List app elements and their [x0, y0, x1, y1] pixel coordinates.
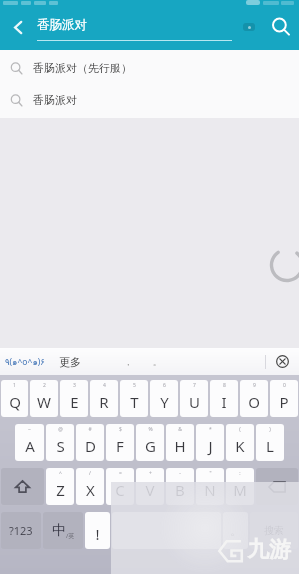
staticText: ^ — [59, 470, 62, 477]
staticText: J — [208, 436, 213, 456]
button[interactable]: + — [136, 468, 164, 505]
button[interactable]: Hide keyboard — [266, 348, 299, 375]
staticText: T — [130, 392, 139, 412]
staticText: I — [221, 392, 227, 412]
button[interactable]: Search — [263, 11, 299, 50]
button[interactable]: 7 — [180, 380, 208, 417]
staticText: ( — [239, 426, 241, 433]
staticText: $ — [119, 426, 122, 433]
button[interactable]: ?123 — [1, 512, 41, 549]
staticText: 6 — [163, 382, 166, 389]
button[interactable]: 更多 — [59, 355, 81, 369]
button[interactable]: 3 — [60, 380, 88, 417]
button[interactable]: ! — [85, 512, 110, 549]
button[interactable]: : — [226, 468, 254, 505]
button[interactable]: ) — [256, 424, 284, 461]
button[interactable]: " — [196, 468, 224, 505]
button[interactable]: ^ — [46, 468, 74, 505]
button[interactable]: Back — [0, 11, 37, 50]
staticText: Q — [9, 392, 21, 412]
button[interactable]: 。 — [223, 512, 248, 549]
staticText: 2 — [43, 382, 46, 389]
staticText: B — [175, 480, 185, 500]
staticText: % — [148, 426, 153, 433]
staticText: " — [209, 470, 212, 477]
button[interactable]: ٩(๑^o^๑)۶ — [5, 355, 45, 369]
button[interactable]: ~ — [15, 424, 44, 461]
staticText: Z — [56, 480, 65, 500]
staticText: / — [89, 470, 91, 477]
staticText: F — [116, 436, 124, 456]
staticText: X — [86, 480, 95, 500]
staticText: Y — [160, 392, 169, 412]
staticText: U — [189, 392, 200, 412]
staticText: 更多 — [59, 355, 81, 369]
staticText: H — [174, 436, 186, 456]
staticText: ) — [269, 426, 271, 433]
staticText: R — [99, 392, 109, 412]
button[interactable]: @ — [46, 424, 74, 461]
button[interactable]: Backspace — [256, 468, 298, 505]
staticText: ٩(๑^o^๑)۶ — [5, 355, 45, 369]
staticText: C — [115, 480, 125, 500]
staticText: E — [70, 392, 79, 412]
staticText: V — [145, 480, 155, 500]
staticText: 7 — [193, 382, 196, 389]
staticText: 。 — [153, 357, 161, 367]
staticText: 5 — [133, 382, 136, 389]
button[interactable]: % — [136, 424, 164, 461]
button[interactable]: / — [76, 468, 104, 505]
button[interactable]: 4 — [90, 380, 118, 417]
staticText: 香肠派对（先行服） — [33, 61, 132, 75]
button[interactable]: ， — [115, 348, 141, 375]
staticText: P — [279, 392, 289, 412]
staticText: = — [119, 470, 122, 477]
staticText: 8 — [223, 382, 226, 389]
button[interactable]: 1 — [1, 380, 28, 417]
staticText: ?123 — [9, 523, 33, 538]
staticText: - — [179, 470, 181, 477]
button[interactable]: ( — [226, 424, 254, 461]
staticText: 1 — [13, 382, 16, 389]
button[interactable]: 。 — [141, 348, 173, 375]
button[interactable]: 搜索 — [250, 512, 298, 549]
staticText: # — [88, 426, 92, 433]
staticText: 3 — [73, 382, 76, 389]
staticText: G — [145, 436, 156, 456]
staticText: N — [204, 480, 216, 500]
button[interactable]: 2 — [30, 380, 58, 417]
staticText: 香肠派对 — [37, 17, 87, 33]
staticText: /英 — [66, 532, 75, 540]
staticText: 4 — [103, 382, 106, 389]
button[interactable]: $ — [106, 424, 134, 461]
staticText: 9 — [253, 382, 256, 389]
button[interactable]: 5 — [120, 380, 148, 417]
button[interactable]: * — [196, 424, 224, 461]
button[interactable]: Clear text — [235, 11, 263, 50]
button[interactable]: 香肠派对（先行服） — [0, 52, 299, 84]
button[interactable]: 9 — [240, 380, 268, 417]
button[interactable]: 8 — [210, 380, 238, 417]
staticText: ， — [124, 357, 132, 367]
button[interactable]: = — [106, 468, 134, 505]
staticText: 中 — [52, 522, 66, 540]
button[interactable]: - — [166, 468, 194, 505]
staticText: O — [248, 392, 260, 412]
button[interactable]: 6 — [150, 380, 178, 417]
staticText: ! — [95, 524, 100, 544]
staticText: & — [178, 426, 182, 433]
staticText: K — [235, 436, 245, 456]
button[interactable]: & — [166, 424, 194, 461]
staticText: 香肠派对 — [33, 93, 77, 107]
staticText: : — [239, 470, 241, 477]
button[interactable]: 香肠派对 — [0, 84, 299, 116]
button[interactable]: Shift — [1, 468, 44, 505]
staticText: 0 — [283, 382, 286, 389]
button[interactable]: # — [76, 424, 104, 461]
staticText: W — [37, 392, 51, 412]
button[interactable]: 中 — [43, 512, 83, 549]
button[interactable]: 0 — [270, 380, 298, 417]
staticText: D — [85, 436, 96, 456]
